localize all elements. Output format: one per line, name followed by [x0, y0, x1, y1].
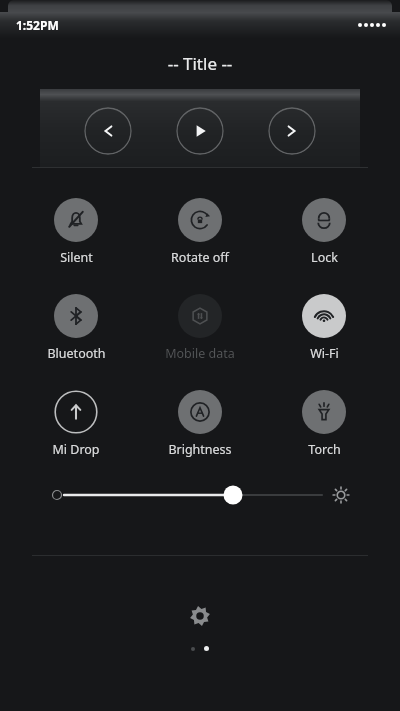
button[interactable]: Lock: [270, 198, 378, 266]
staticText: Silent: [60, 249, 93, 266]
staticText: Mobile data: [165, 345, 235, 362]
button[interactable]: Previous: [84, 107, 132, 155]
button[interactable]: Brightness: [146, 390, 254, 458]
staticText: Mi Drop: [52, 441, 100, 458]
button[interactable]: Bluetooth: [22, 294, 130, 362]
button[interactable]: [50, 480, 350, 510]
button[interactable]: Mobile data: [146, 294, 254, 362]
button[interactable]: Silent: [22, 198, 130, 266]
staticText: 1:52PM: [16, 17, 59, 33]
staticText: Brightness: [168, 441, 232, 458]
staticText: Bluetooth: [47, 345, 106, 362]
staticText: -- Title --: [0, 52, 400, 75]
button[interactable]: Mi Drop: [22, 390, 130, 458]
staticText: Torch: [308, 441, 341, 458]
staticText: Rotate off: [171, 249, 229, 266]
button[interactable]: Torch: [270, 390, 378, 458]
button[interactable]: Next: [268, 107, 316, 155]
button[interactable]: Rotate off: [146, 198, 254, 266]
staticText: Lock: [311, 249, 338, 266]
button[interactable]: Settings: [180, 596, 220, 636]
button[interactable]: Wi-Fi: [270, 294, 378, 362]
staticText: Wi-Fi: [310, 345, 339, 362]
button[interactable]: Play: [176, 107, 224, 155]
